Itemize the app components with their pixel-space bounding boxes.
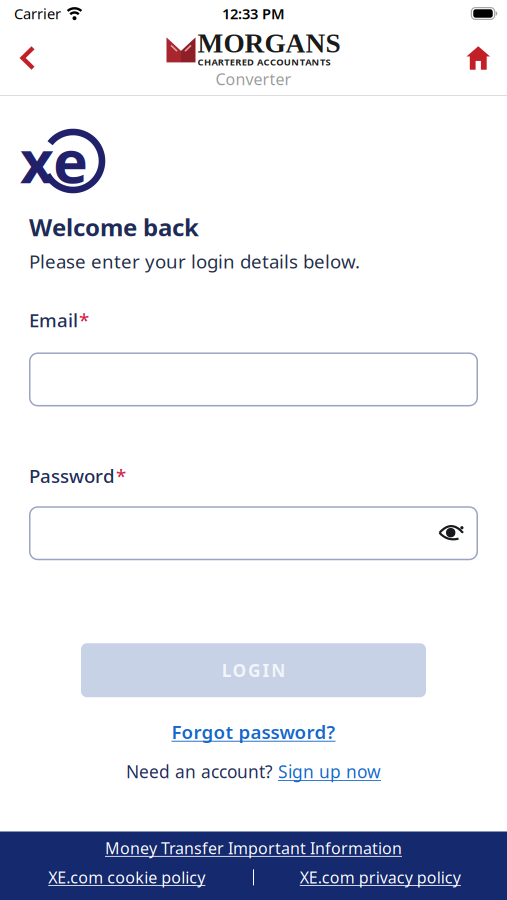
staticText: Sign up now (278, 760, 381, 783)
button[interactable]: Show password (439, 525, 478, 541)
staticText: Need an account? (126, 760, 278, 783)
button[interactable]: LOGIN (81, 643, 426, 697)
staticText: Email (29, 308, 78, 332)
staticText: 12:33 PM (222, 4, 285, 23)
staticText: XE.com privacy policy (300, 867, 461, 888)
staticText: Welcome back (29, 211, 199, 243)
button[interactable]: Sign up now (278, 760, 381, 783)
staticText: MORGANS (197, 28, 340, 58)
button[interactable]: Home (466, 40, 507, 76)
staticText: * (79, 308, 89, 332)
staticText: Money Transfer Important Information (105, 837, 402, 859)
staticText: CHARTERED ACCOUNTANTS (197, 56, 330, 68)
button[interactable]: Money Transfer Important Information (105, 837, 402, 859)
staticText: Password (29, 463, 115, 488)
staticText: Forgot password? (171, 719, 335, 744)
staticText: Please enter your login details below. (29, 249, 360, 274)
staticText: LOGIN (222, 659, 285, 682)
staticText: XE.com cookie policy (48, 867, 205, 888)
staticText: Carrier (14, 4, 61, 23)
staticText: * (116, 463, 126, 488)
button[interactable]: Back (0, 40, 35, 76)
button[interactable]: Forgot password? (171, 719, 335, 744)
staticText: Converter (215, 68, 291, 90)
button[interactable]: XE.com cookie policy (0, 867, 253, 888)
staticText: xe (20, 121, 88, 199)
button[interactable]: XE.com privacy policy (253, 867, 507, 888)
